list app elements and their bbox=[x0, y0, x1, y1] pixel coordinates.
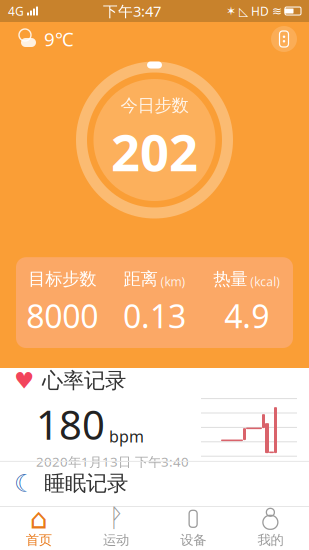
staticText: ᚹ bbox=[108, 506, 123, 531]
staticText: ◺ bbox=[239, 4, 248, 18]
staticText: 热量 bbox=[213, 268, 247, 289]
staticText: ≋ bbox=[272, 4, 282, 18]
button[interactable]: 我的 bbox=[232, 504, 309, 550]
staticText: ☾ bbox=[14, 470, 36, 497]
staticText: 距离 bbox=[123, 268, 157, 289]
button[interactable]: 目标步数 bbox=[16, 257, 293, 348]
button[interactable]: ᚹ bbox=[77, 504, 154, 550]
staticText: (km) bbox=[160, 274, 185, 289]
button[interactable]: ⌂ bbox=[0, 504, 77, 550]
staticText: 运动 bbox=[103, 532, 129, 548]
staticText: bpm bbox=[109, 426, 144, 447]
button[interactable]: ☾ bbox=[0, 468, 309, 506]
staticText: 设备 bbox=[180, 532, 206, 548]
staticText: 下午3:47 bbox=[103, 1, 161, 21]
staticText: 180 bbox=[36, 398, 105, 451]
staticText: HD bbox=[251, 3, 269, 19]
staticText: 202 bbox=[111, 118, 198, 185]
button[interactable]: ♥ bbox=[0, 368, 309, 468]
staticText: ⌂ bbox=[30, 503, 48, 535]
staticText: ♥ bbox=[14, 368, 34, 393]
staticText: 目标步数 bbox=[28, 268, 96, 289]
staticText: 0.13 bbox=[123, 294, 186, 337]
staticText: 4G bbox=[8, 3, 24, 19]
staticText: 睡眠记录 bbox=[44, 470, 128, 497]
staticText: 首页 bbox=[26, 532, 52, 548]
staticText: 我的 bbox=[257, 532, 283, 548]
staticText: 今日步数 bbox=[120, 95, 188, 116]
button[interactable]: 设备 bbox=[154, 504, 232, 550]
staticText: 2020年1月13日 下午3:40 bbox=[36, 453, 189, 470]
staticText: ✶ bbox=[226, 4, 236, 18]
staticText: 心率记录 bbox=[42, 367, 126, 394]
staticText: 4.9 bbox=[224, 294, 269, 337]
button[interactable]: 9℃ bbox=[0, 23, 74, 55]
button[interactable]: 设备 bbox=[271, 26, 309, 52]
staticText: 9℃ bbox=[44, 27, 74, 51]
staticText: 8000 bbox=[26, 294, 98, 337]
staticText: (kcal) bbox=[250, 274, 280, 289]
